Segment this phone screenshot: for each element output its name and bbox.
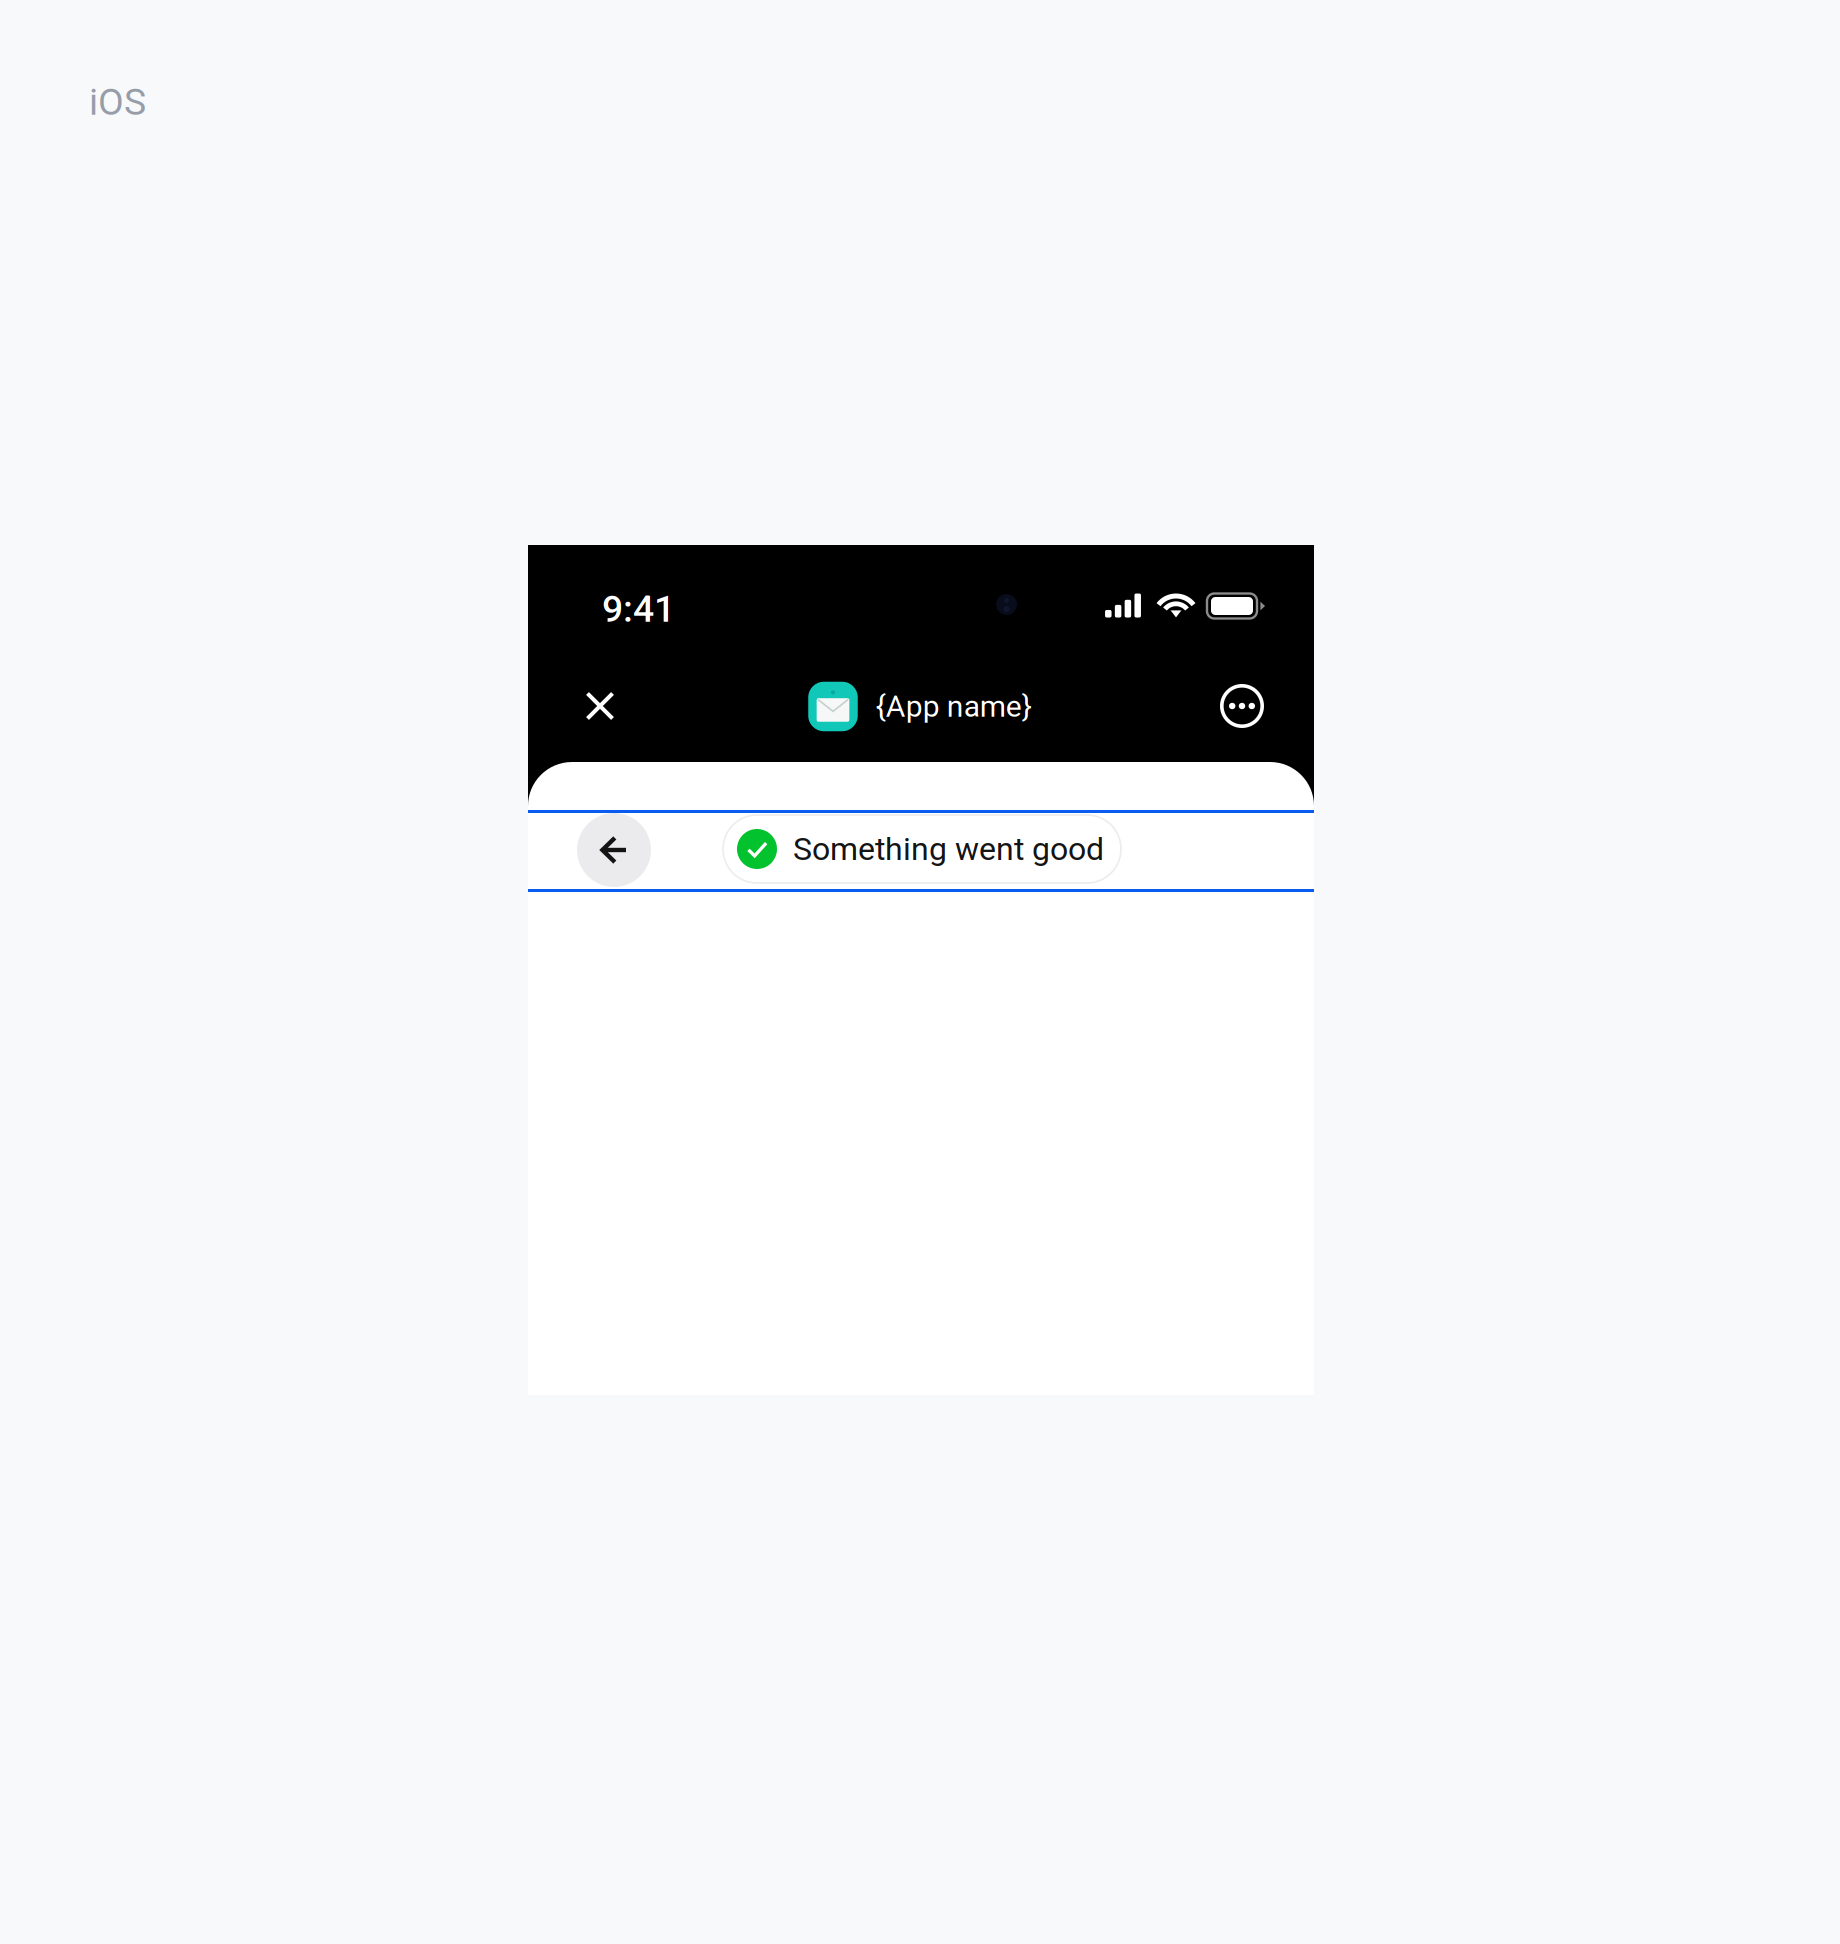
button[interactable]: Close xyxy=(569,675,631,737)
button[interactable]: Back xyxy=(577,813,651,887)
staticText: {App name} xyxy=(876,689,1032,724)
staticText: iOS xyxy=(89,80,146,124)
staticText: Something went good xyxy=(793,830,1104,868)
button[interactable]: Something went good xyxy=(723,815,1121,883)
staticText: 9:41 xyxy=(602,587,675,631)
button[interactable]: More options xyxy=(1211,675,1273,737)
